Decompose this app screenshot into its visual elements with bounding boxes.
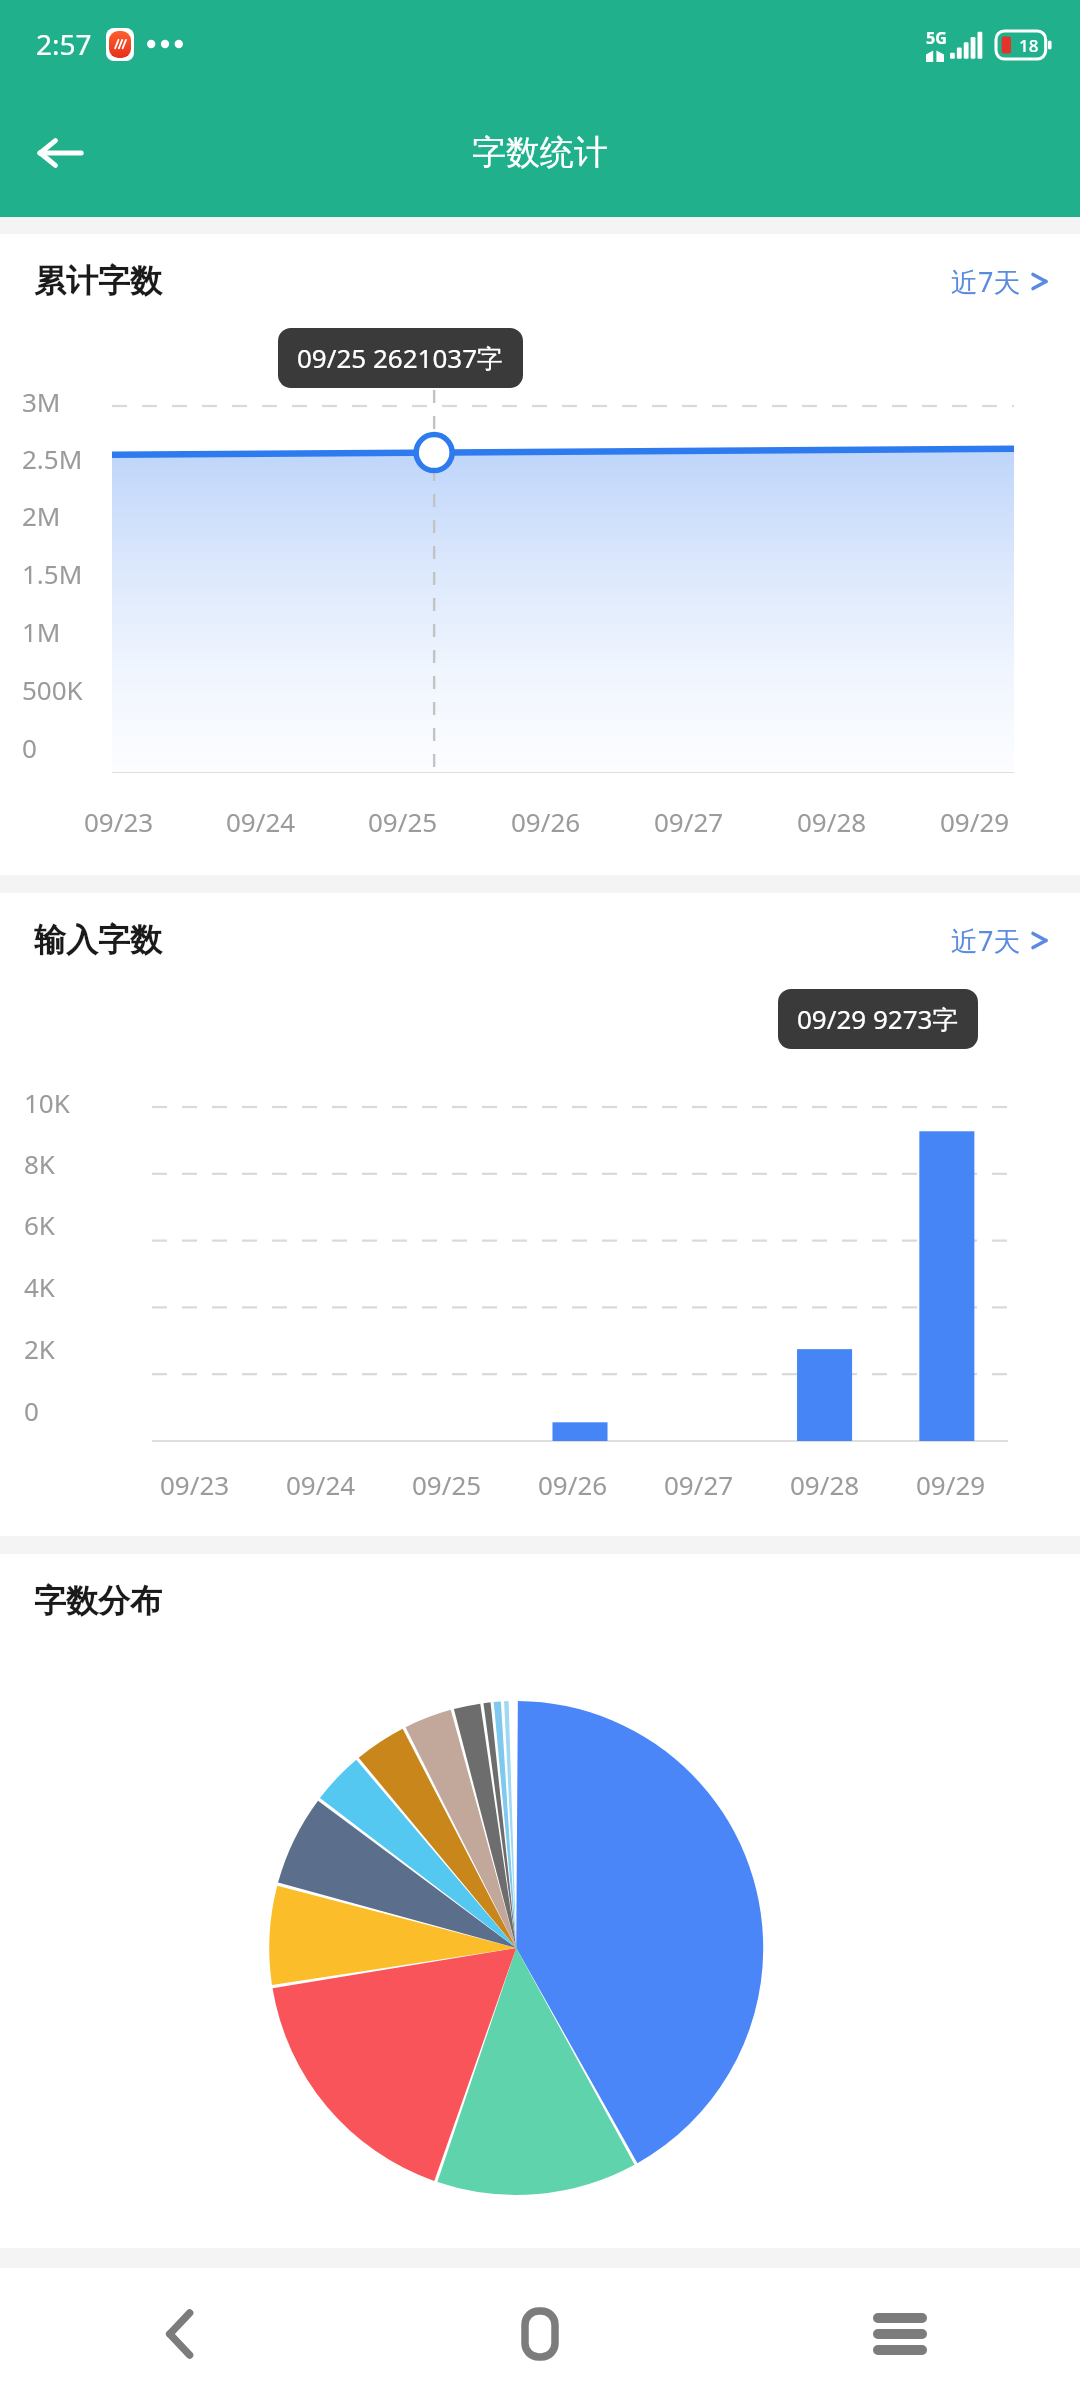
staticText: 2.5M	[22, 441, 83, 476]
staticText: 输入字数	[34, 920, 162, 960]
staticText: 2M	[22, 498, 61, 533]
staticText: 近7天	[951, 263, 1021, 300]
staticText: 09/23	[160, 1467, 230, 1502]
staticText: 6K	[24, 1207, 55, 1242]
staticText: 09/28	[790, 1467, 860, 1502]
staticText: 1.5M	[22, 556, 83, 591]
staticText: 09/24	[286, 1467, 356, 1502]
staticText: 18	[1019, 34, 1039, 57]
staticText: 09/29	[916, 1467, 986, 1502]
staticText: 5G	[926, 27, 947, 49]
staticText: 09/27	[654, 804, 724, 839]
staticText: 09/24	[226, 804, 296, 839]
staticText: 8K	[24, 1146, 55, 1181]
button[interactable]: Back	[22, 115, 98, 191]
staticText: 09/27	[664, 1467, 734, 1502]
staticText: 09/29	[940, 804, 1010, 839]
staticText: 字数统计	[472, 131, 608, 174]
staticText: 1M	[22, 614, 61, 649]
button[interactable]: Recent apps	[720, 2268, 1080, 2400]
staticText: 500K	[22, 672, 83, 707]
staticText: 09/25	[368, 804, 438, 839]
button[interactable]: 近7天	[941, 914, 1058, 967]
staticText: 累计字数	[34, 261, 162, 301]
staticText: 0	[22, 730, 37, 765]
staticText: 2:57	[36, 25, 92, 63]
staticText: 3M	[22, 384, 61, 419]
staticText: 09/26	[538, 1467, 608, 1502]
staticText: 09/29 9273字	[797, 1001, 959, 1037]
staticText: 4K	[24, 1269, 55, 1304]
staticText: 09/26	[511, 804, 581, 839]
button[interactable]: Back	[0, 2268, 360, 2400]
staticText: 09/28	[797, 804, 867, 839]
staticText: 09/25 2621037字	[297, 340, 504, 376]
staticText: 2K	[24, 1331, 55, 1366]
staticText: 0	[24, 1393, 39, 1428]
button[interactable]: Home	[360, 2268, 720, 2400]
staticText: 字数分布	[34, 1581, 162, 1621]
button[interactable]: 近7天	[941, 255, 1058, 308]
staticText: 10K	[24, 1085, 70, 1120]
staticText: 09/23	[84, 804, 154, 839]
staticText: 近7天	[951, 922, 1021, 959]
staticText: 09/25	[412, 1467, 482, 1502]
